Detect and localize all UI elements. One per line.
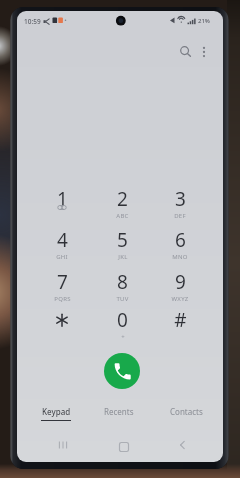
staticText: 9 xyxy=(175,269,186,295)
staticText: WXYZ xyxy=(171,295,189,303)
button[interactable]: 8 xyxy=(94,269,150,303)
button[interactable]: Back xyxy=(171,433,195,457)
button[interactable]: 2 xyxy=(94,186,150,220)
staticText: + xyxy=(121,333,125,341)
staticText: 10:59 xyxy=(24,17,41,26)
staticText: 6 xyxy=(175,227,186,253)
button[interactable]: Recents xyxy=(89,406,149,429)
button[interactable]: # xyxy=(152,307,208,341)
button[interactable]: 1 xyxy=(34,186,90,220)
button[interactable]: Contacts xyxy=(156,406,216,429)
button[interactable]: 7 xyxy=(34,269,90,303)
staticText: 0 xyxy=(117,307,128,333)
staticText: DEF xyxy=(174,212,186,220)
button[interactable]: 3 xyxy=(152,186,208,220)
button[interactable]: Search xyxy=(174,40,198,64)
staticText: 8 xyxy=(117,269,128,295)
button[interactable]: Keypad xyxy=(26,406,86,429)
staticText: 21% xyxy=(198,17,210,25)
staticText: GHI xyxy=(56,253,68,261)
button[interactable] xyxy=(34,307,90,341)
staticText: MNO xyxy=(172,253,188,261)
staticText: 5 xyxy=(117,227,128,253)
button[interactable]: Call xyxy=(104,353,140,389)
staticText: Contacts xyxy=(170,406,203,417)
button[interactable]: 0 xyxy=(94,307,150,341)
button[interactable]: Recent apps xyxy=(51,433,75,457)
staticText: 3 xyxy=(175,186,186,212)
staticText: 1 xyxy=(57,186,68,212)
button[interactable]: 6 xyxy=(152,227,208,261)
staticText: Recents xyxy=(104,406,134,417)
staticText: 4 xyxy=(57,227,68,253)
button[interactable]: 5 xyxy=(94,227,150,261)
button[interactable]: Home xyxy=(112,435,136,459)
staticText: ABC xyxy=(116,212,129,220)
staticText: # xyxy=(174,307,187,333)
staticText: JKL xyxy=(118,253,128,261)
staticText: 7 xyxy=(57,269,68,295)
button[interactable]: 9 xyxy=(152,269,208,303)
button[interactable]: 4 xyxy=(34,227,90,261)
staticText: 2 xyxy=(117,186,128,212)
staticText: TUV xyxy=(116,295,129,303)
staticText: PQRS xyxy=(54,295,71,303)
staticText: Keypad xyxy=(42,406,71,417)
button[interactable]: More options xyxy=(192,40,216,64)
